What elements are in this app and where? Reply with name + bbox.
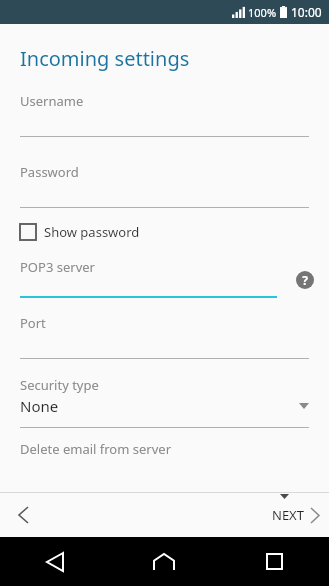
button[interactable]: Username	[0, 92, 329, 137]
button[interactable]: Security type	[0, 376, 329, 428]
button[interactable]: Home	[109, 537, 219, 586]
button[interactable]: Show password	[0, 219, 329, 245]
staticText: Password	[20, 163, 79, 181]
button[interactable]: NEXT	[272, 495, 321, 535]
staticText: ?	[302, 272, 308, 288]
button[interactable]: Back	[0, 537, 109, 586]
button[interactable]: Recents	[219, 537, 329, 586]
staticText: Port	[20, 314, 46, 332]
staticText: Incoming settings	[20, 45, 190, 72]
staticText: None	[20, 396, 59, 416]
staticText: Show password	[44, 223, 140, 241]
staticText: Security type	[20, 376, 99, 394]
staticText: POP3 server	[20, 258, 95, 276]
button[interactable]: Port	[0, 314, 329, 359]
button[interactable]: Back	[6, 498, 40, 532]
button[interactable]: Password	[0, 163, 329, 208]
staticText: 10:00	[291, 4, 322, 20]
staticText: 100%	[248, 5, 277, 20]
button[interactable]: Help	[296, 271, 314, 289]
staticText: Delete email from server	[20, 440, 171, 458]
staticText: Username	[20, 92, 84, 110]
staticText: NEXT	[272, 506, 304, 524]
